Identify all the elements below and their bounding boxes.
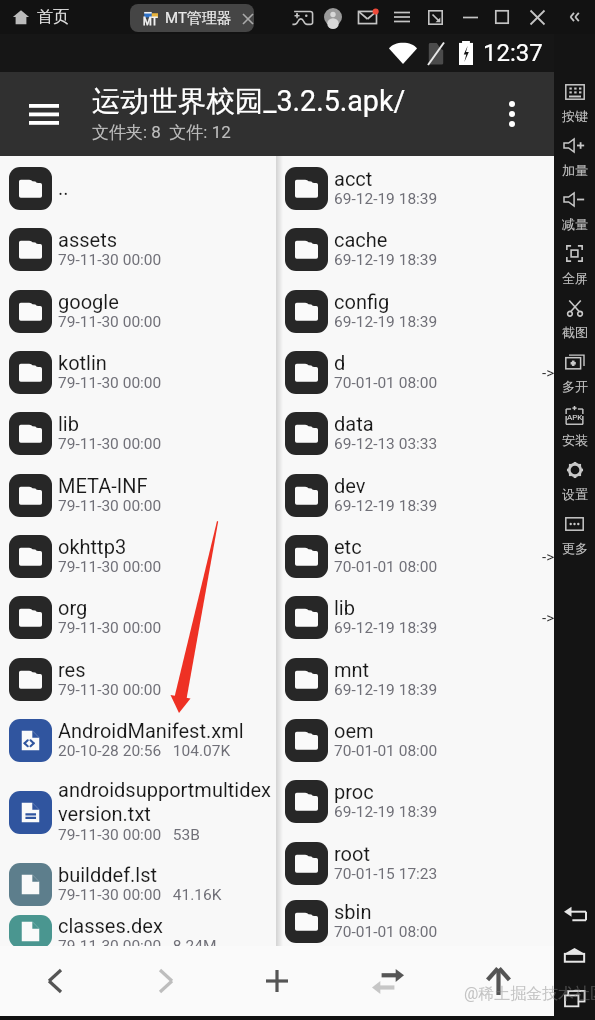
button[interactable]: New [221, 946, 332, 1016]
button[interactable]: proc [276, 771, 554, 832]
button[interactable]: lib [276, 587, 554, 648]
staticText: 多开 [562, 378, 588, 394]
button[interactable]: builddef.lst [0, 853, 276, 915]
staticText: 首页 [37, 7, 69, 27]
button[interactable]: Back [554, 892, 595, 934]
staticText: 79-11-30 00:00 [58, 619, 162, 637]
button[interactable]: root [276, 832, 554, 894]
staticText: oem [334, 719, 374, 742]
button[interactable]: kotlin [0, 342, 276, 403]
staticText: 减量 [562, 216, 588, 232]
staticText: 按键 [562, 108, 588, 124]
button[interactable]: Account [319, 3, 347, 31]
button[interactable]: mnt [276, 648, 554, 710]
button[interactable]: AndroidManifest.xml [0, 710, 276, 771]
staticText: lib [334, 596, 355, 619]
button[interactable]: Up [443, 946, 554, 1016]
staticText: -> [542, 548, 554, 566]
button[interactable]: META-INF [0, 464, 276, 526]
button[interactable]: APK [554, 404, 595, 458]
button[interactable]: acct [276, 158, 554, 219]
staticText: 更多 [562, 540, 588, 556]
button[interactable]: Minimize [456, 3, 484, 31]
staticText: mnt [334, 658, 370, 681]
staticText: kotlin [58, 351, 107, 374]
staticText: etc [334, 535, 362, 558]
button[interactable]: 按键 [554, 80, 595, 134]
staticText: google [58, 290, 119, 313]
staticText: 69-12-19 18:39 [334, 681, 438, 699]
staticText: 69-12-19 18:39 [334, 497, 438, 515]
button[interactable]: Home [554, 934, 595, 976]
button[interactable]: okhttp3 [0, 526, 276, 587]
button[interactable]: lib [0, 403, 276, 464]
staticText: 运动世界校园_3.2.5.apk/ [92, 83, 406, 119]
staticText: 79-11-30 00:00 [58, 435, 162, 453]
button[interactable]: org [0, 587, 276, 648]
staticText: 设置 [562, 486, 588, 502]
button[interactable]: sbin [276, 894, 554, 948]
staticText: 69-12-19 18:39 [334, 313, 438, 331]
button[interactable]: Games [288, 3, 316, 31]
button[interactable]: 减量 [554, 188, 595, 242]
staticText: META-INF [58, 474, 148, 497]
button[interactable]: 多开 [554, 350, 595, 404]
staticText: lib [58, 412, 79, 435]
staticText: 79-11-30 00:00 [58, 251, 162, 269]
staticText: -> [542, 609, 554, 627]
button[interactable]: Close [523, 3, 551, 31]
staticText: 79-11-30 00:00 [58, 497, 162, 515]
button[interactable]: 截图 [554, 296, 595, 350]
button[interactable]: 加量 [554, 134, 595, 188]
button[interactable]: Recent apps [554, 976, 595, 1020]
button[interactable]: Navigation menu [20, 90, 68, 138]
staticText: dev [334, 474, 366, 497]
button[interactable]: assets [0, 219, 276, 280]
button[interactable]: data [276, 403, 554, 464]
button[interactable]: Back [0, 946, 110, 1016]
button[interactable]: etc [276, 526, 554, 587]
button[interactable]: 设置 [554, 458, 595, 512]
staticText: data [334, 412, 374, 435]
button[interactable]: MT [130, 4, 254, 32]
staticText: cache [334, 228, 388, 251]
staticText: 79-11-30 00:00 [58, 558, 162, 576]
staticText: 69-12-19 18:39 [334, 251, 438, 269]
button[interactable]: 全屏 [554, 242, 595, 296]
button[interactable]: Collapse [560, 3, 588, 31]
staticText: 79-11-30 00:00 41.16K [58, 886, 222, 904]
staticText: 70-01-01 08:00 [334, 923, 438, 941]
staticText: 69-12-19 18:39 [334, 803, 438, 821]
button[interactable]: google [0, 280, 276, 342]
button[interactable]: config [276, 280, 554, 342]
staticText: res [58, 658, 86, 681]
staticText: AndroidManifest.xml [58, 719, 244, 742]
button[interactable]: Switch [332, 946, 443, 1016]
button[interactable]: d [276, 342, 554, 403]
staticText: 79-11-30 00:00 8.24M [58, 937, 217, 947]
button[interactable]: Maximize [488, 3, 516, 31]
staticText: .. [58, 176, 69, 199]
button[interactable]: More options [490, 92, 534, 136]
button[interactable]: cache [276, 219, 554, 280]
button[interactable]: Messages [353, 3, 381, 31]
staticText: 截图 [562, 324, 588, 340]
button[interactable]: .. [0, 158, 276, 219]
button[interactable]: oem [276, 710, 554, 771]
staticText: 70-01-01 08:00 [334, 374, 438, 392]
button[interactable]: androidsupportmultidexversion.txt [0, 771, 276, 853]
staticText: acct [334, 167, 373, 190]
button[interactable]: res [0, 648, 276, 710]
button[interactable]: classes.dex [0, 915, 276, 948]
staticText: 69-12-13 03:33 [334, 435, 438, 453]
staticText: assets [58, 228, 117, 251]
button[interactable]: 更多 [554, 512, 595, 566]
button[interactable]: 首页 [12, 7, 69, 27]
button[interactable]: Resize [421, 3, 449, 31]
staticText: d [334, 351, 346, 374]
staticText: 12:37 [483, 39, 543, 67]
staticText: config [334, 290, 390, 313]
button[interactable]: Menu [388, 3, 416, 31]
button[interactable]: dev [276, 464, 554, 526]
button[interactable]: Forward [110, 946, 221, 1016]
